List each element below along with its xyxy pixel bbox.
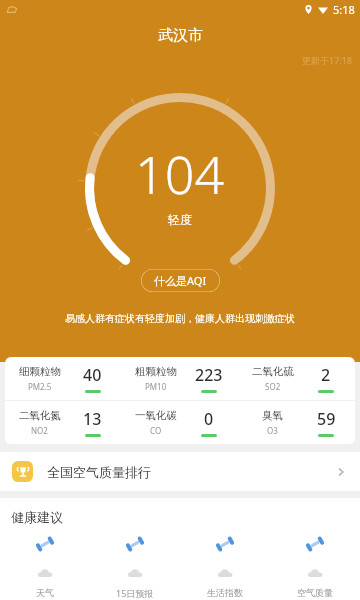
staticText: 更新于17:18 bbox=[302, 54, 353, 66]
button[interactable]: 什么是AQI bbox=[141, 269, 220, 292]
button[interactable]: Health advice bbox=[90, 533, 180, 555]
staticText: PM10 bbox=[145, 381, 167, 392]
staticText: 223 bbox=[195, 364, 223, 386]
staticText: PM2.5 bbox=[28, 381, 52, 392]
staticText: SO2 bbox=[265, 381, 281, 392]
button[interactable]: 全国空气质量排行 bbox=[0, 452, 360, 491]
staticText: 粗颗粒物 bbox=[135, 365, 177, 378]
button[interactable]: Health advice bbox=[270, 533, 360, 555]
staticText: 2 bbox=[321, 364, 331, 386]
staticText: 15日预报 bbox=[116, 587, 154, 599]
button[interactable]: Health advice bbox=[180, 533, 270, 555]
staticText: 健康建议 bbox=[11, 509, 63, 525]
staticText: 104 bbox=[135, 138, 225, 209]
button[interactable]: 15日预报 bbox=[90, 565, 180, 599]
staticText: 59 bbox=[317, 408, 336, 430]
staticText: 5:18 bbox=[333, 2, 355, 17]
staticText: 二氧化氮 bbox=[19, 409, 61, 422]
staticText: 臭氧 bbox=[262, 409, 283, 422]
button[interactable]: 空气质量 bbox=[270, 565, 360, 598]
staticText: 全国空气质量排行 bbox=[47, 464, 151, 480]
staticText: 空气质量 bbox=[297, 587, 333, 598]
staticText: CO bbox=[150, 425, 162, 436]
staticText: 一氧化碳 bbox=[135, 409, 177, 422]
staticText: O3 bbox=[267, 425, 278, 436]
button[interactable]: 生活指数 bbox=[180, 565, 270, 598]
staticText: 40 bbox=[83, 364, 102, 386]
staticText: 13 bbox=[83, 408, 102, 430]
staticText: 什么是AQI bbox=[154, 273, 207, 288]
staticText: 生活指数 bbox=[207, 587, 243, 598]
button[interactable]: Health advice bbox=[0, 533, 90, 555]
staticText: 0 bbox=[204, 408, 214, 430]
staticText: 天气 bbox=[36, 587, 54, 598]
staticText: 二氧化硫 bbox=[252, 365, 294, 378]
staticText: NO2 bbox=[31, 425, 48, 436]
staticText: 轻度 bbox=[168, 212, 192, 227]
staticText: 易感人群有症状有轻度加剧，健康人群出现刺激症状 bbox=[65, 312, 295, 325]
button[interactable]: 天气 bbox=[0, 565, 90, 598]
staticText: 细颗粒物 bbox=[19, 365, 61, 378]
staticText: 武汉市 bbox=[158, 26, 203, 45]
